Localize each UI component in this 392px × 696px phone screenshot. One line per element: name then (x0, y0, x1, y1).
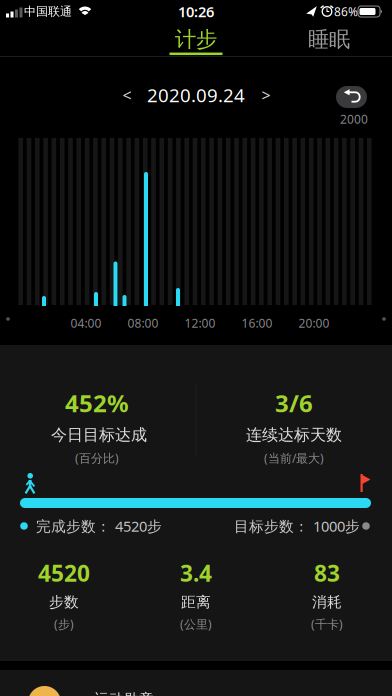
staticText: 10:26 (178, 2, 214, 21)
button[interactable]: 睡眠 (279, 24, 379, 54)
staticText: (千卡) (311, 616, 343, 632)
staticText: (当前/最大) (264, 450, 324, 466)
staticText: 目标步数： 1000步 (234, 516, 360, 536)
staticText: (公里) (180, 616, 212, 632)
staticText: (步) (54, 616, 74, 632)
staticText: 距离 (181, 593, 211, 611)
staticText: 08:00 (127, 315, 158, 331)
staticText: 中国联通 (24, 4, 72, 19)
button[interactable]: Reset goal (336, 86, 367, 108)
staticText: 04:00 (70, 315, 101, 331)
staticText: 完成步数： 4520步 (36, 516, 162, 536)
staticText: 83 (314, 558, 340, 588)
staticText: 睡眠 (308, 26, 350, 53)
staticText: 2000 (340, 111, 368, 127)
staticText: > (261, 84, 270, 106)
staticText: 86% (334, 3, 358, 19)
staticText: 12:00 (184, 315, 215, 331)
staticText: 今日目标达成 (51, 425, 147, 445)
staticText: 452% (65, 387, 129, 419)
staticText: 步数 (49, 593, 79, 611)
staticText: 4520 (38, 558, 90, 588)
staticText: 20:00 (298, 315, 329, 331)
staticText: 2020.09.24 (147, 83, 245, 107)
button[interactable]: Next day (253, 82, 279, 108)
staticText: 计步 (175, 26, 217, 53)
staticText: 3.4 (180, 558, 212, 588)
staticText: 3/6 (275, 387, 313, 419)
button[interactable]: 运动勋章 (0, 670, 392, 696)
button[interactable]: Previous day (114, 82, 140, 108)
button[interactable]: 计步 (146, 24, 246, 54)
staticText: < (122, 84, 131, 106)
staticText: 运动勋章 (94, 690, 154, 696)
staticText: 16:00 (241, 315, 272, 331)
staticText: 消耗 (312, 593, 342, 611)
staticText: (百分比) (75, 450, 119, 466)
staticText: 连续达标天数 (246, 425, 342, 445)
